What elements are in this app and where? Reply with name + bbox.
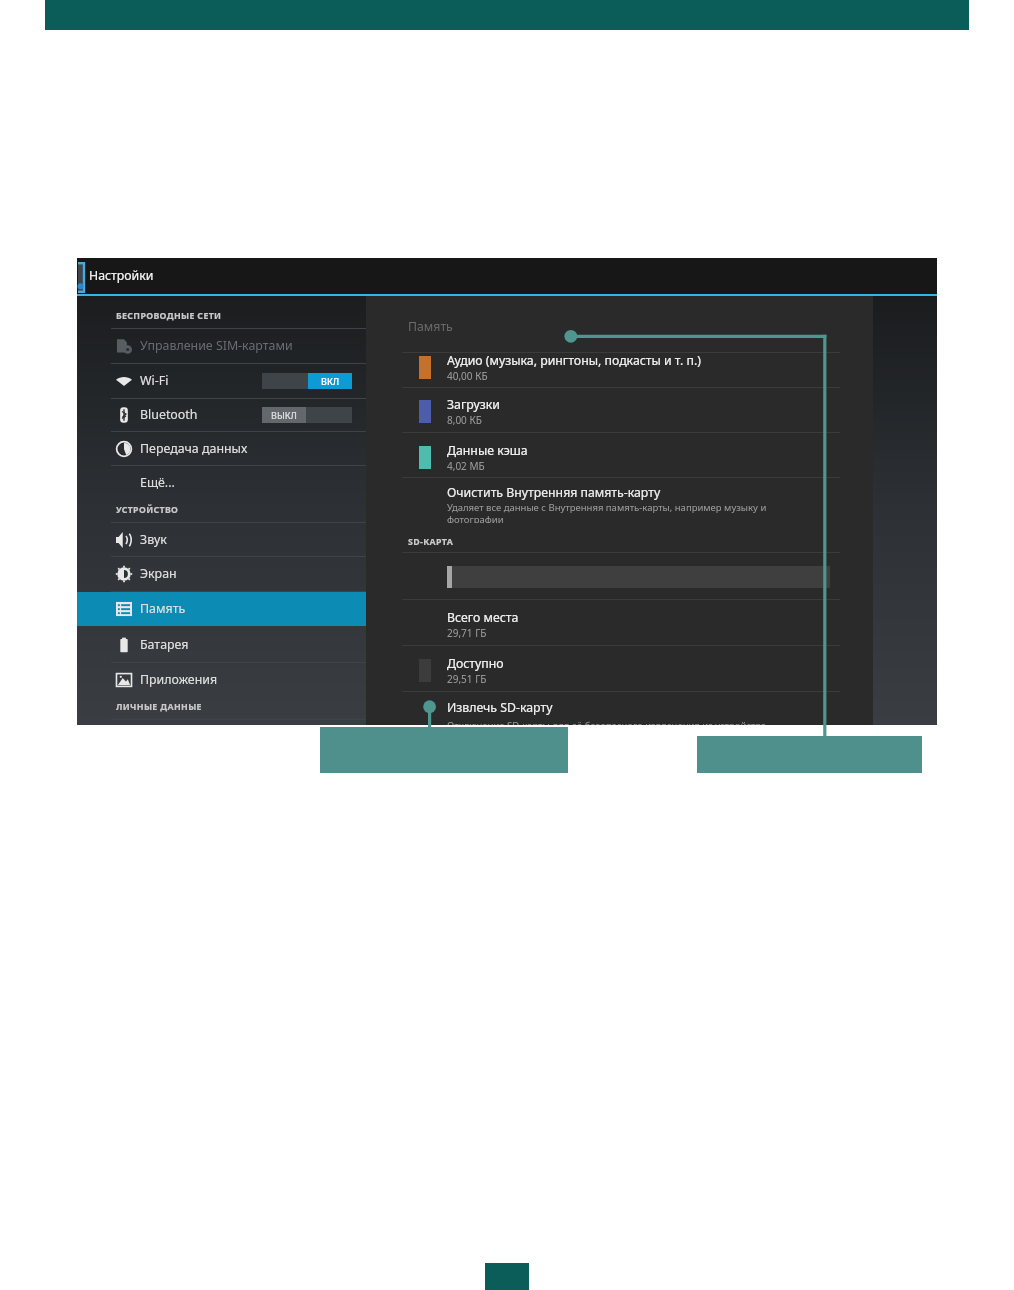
staticText: Приложения	[140, 671, 218, 688]
button[interactable]: Извлечь SD-карту	[366, 692, 937, 725]
staticText: 29,71 ГБ	[447, 626, 487, 640]
staticText: SD-КАРТА	[408, 536, 454, 548]
button[interactable]: Ещё...	[77, 466, 366, 499]
button[interactable]: Всего места	[366, 600, 937, 645]
button[interactable]: Доступно	[366, 646, 937, 691]
button[interactable]: Экран	[77, 557, 366, 591]
button[interactable]: Управление SIM-картами	[77, 329, 366, 363]
staticText: ВКЛ	[321, 375, 340, 387]
staticText: Wi-Fi	[140, 372, 169, 389]
button[interactable]: Очистить Внутренняя память-карту	[366, 478, 937, 523]
staticText: Bluetooth	[140, 406, 198, 423]
button[interactable]: Данные кэша	[366, 433, 937, 477]
button[interactable]: Аудио (музыка, рингтоны, подкасты и т. п…	[366, 353, 937, 387]
staticText: 8,00 КБ	[447, 413, 482, 427]
button[interactable]: Включено	[262, 373, 352, 389]
staticText: Звук	[140, 531, 167, 548]
staticText: БЕСПРОВОДНЫЕ СЕТИ	[116, 310, 222, 322]
staticText: Доступно	[447, 655, 504, 672]
button[interactable]: Звук	[77, 523, 366, 556]
button[interactable]: Wi-Fi	[77, 364, 366, 398]
button[interactable]: Батарея	[77, 627, 366, 662]
staticText: Всего места	[447, 609, 519, 626]
staticText: Память	[408, 318, 453, 335]
staticText: Аудио (музыка, рингтоны, подкасты и т. п…	[447, 352, 702, 369]
staticText: ВЫКЛ	[271, 409, 297, 421]
staticText: Память	[140, 600, 186, 617]
staticText: Данные кэша	[447, 442, 528, 459]
staticText: Загрузки	[447, 396, 500, 413]
button[interactable]: Выключено	[262, 407, 352, 423]
button[interactable]: Передача данных	[77, 432, 366, 465]
button[interactable]: Bluetooth	[77, 399, 366, 431]
staticText: Очистить Внутренняя память-карту	[447, 484, 661, 501]
staticText: Ещё...	[140, 474, 175, 491]
staticText: Извлечь SD-карту	[447, 699, 553, 716]
button[interactable]: Загрузки	[366, 388, 937, 432]
staticText: Передача данных	[140, 440, 248, 457]
staticText: 29,51 ГБ	[447, 672, 487, 686]
staticText: Управление SIM-картами	[140, 337, 293, 354]
staticText: Батарея	[140, 636, 189, 653]
staticText: ЛИЧНЫЕ ДАННЫЕ	[116, 701, 202, 713]
staticText: Удаляет все данные с Внутренняя память-к…	[447, 501, 767, 523]
staticText: Экран	[140, 565, 177, 582]
staticText: Отключение SD-карты для её безопасного и…	[447, 719, 767, 725]
staticText: 40,00 КБ	[447, 369, 488, 383]
button[interactable]: Память	[77, 592, 366, 626]
button[interactable]: Приложения	[77, 663, 366, 697]
staticText: Настройки	[89, 267, 154, 284]
staticText: УСТРОЙСТВО	[116, 504, 179, 516]
staticText: 4,02 МБ	[447, 459, 485, 473]
